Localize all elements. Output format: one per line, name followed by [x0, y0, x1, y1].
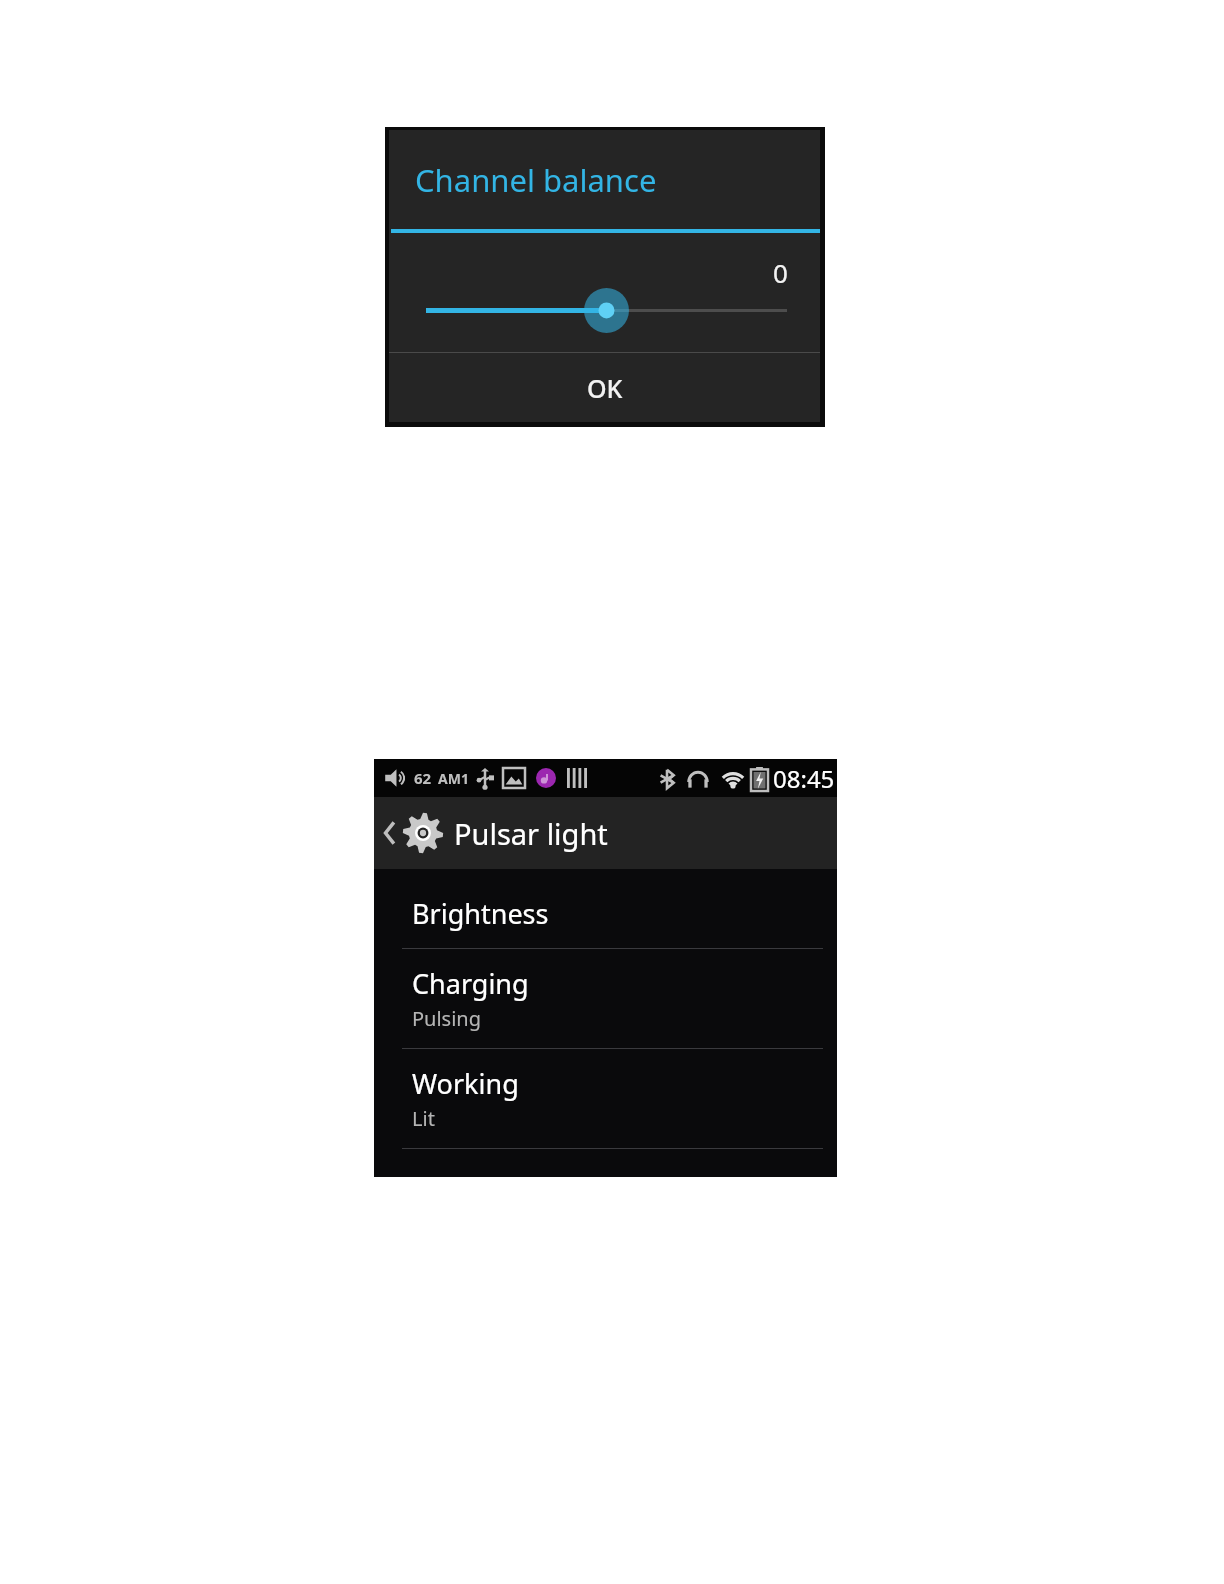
staticText: Charging — [412, 965, 529, 1002]
button[interactable]: Brightness — [374, 879, 837, 948]
staticText: 08:45 — [773, 762, 835, 795]
staticText: OK — [587, 371, 623, 405]
staticText: AM1 — [438, 769, 469, 788]
button[interactable]: Back — [374, 797, 837, 869]
staticText: Channel balance — [415, 159, 657, 201]
button[interactable]: Working — [374, 1049, 837, 1148]
staticText: Pulsing — [412, 1005, 482, 1032]
staticText: 62 — [414, 768, 432, 788]
staticText: Working — [412, 1065, 519, 1102]
staticText: 0 — [773, 255, 788, 290]
button[interactable] — [389, 274, 820, 344]
staticText: Pulsar light — [454, 814, 608, 853]
staticText: Brightness — [412, 895, 549, 932]
other: Back — [382, 819, 396, 847]
staticText: Lit — [412, 1105, 435, 1132]
button[interactable]: Charging — [374, 949, 837, 1048]
button[interactable]: OK — [389, 353, 820, 422]
